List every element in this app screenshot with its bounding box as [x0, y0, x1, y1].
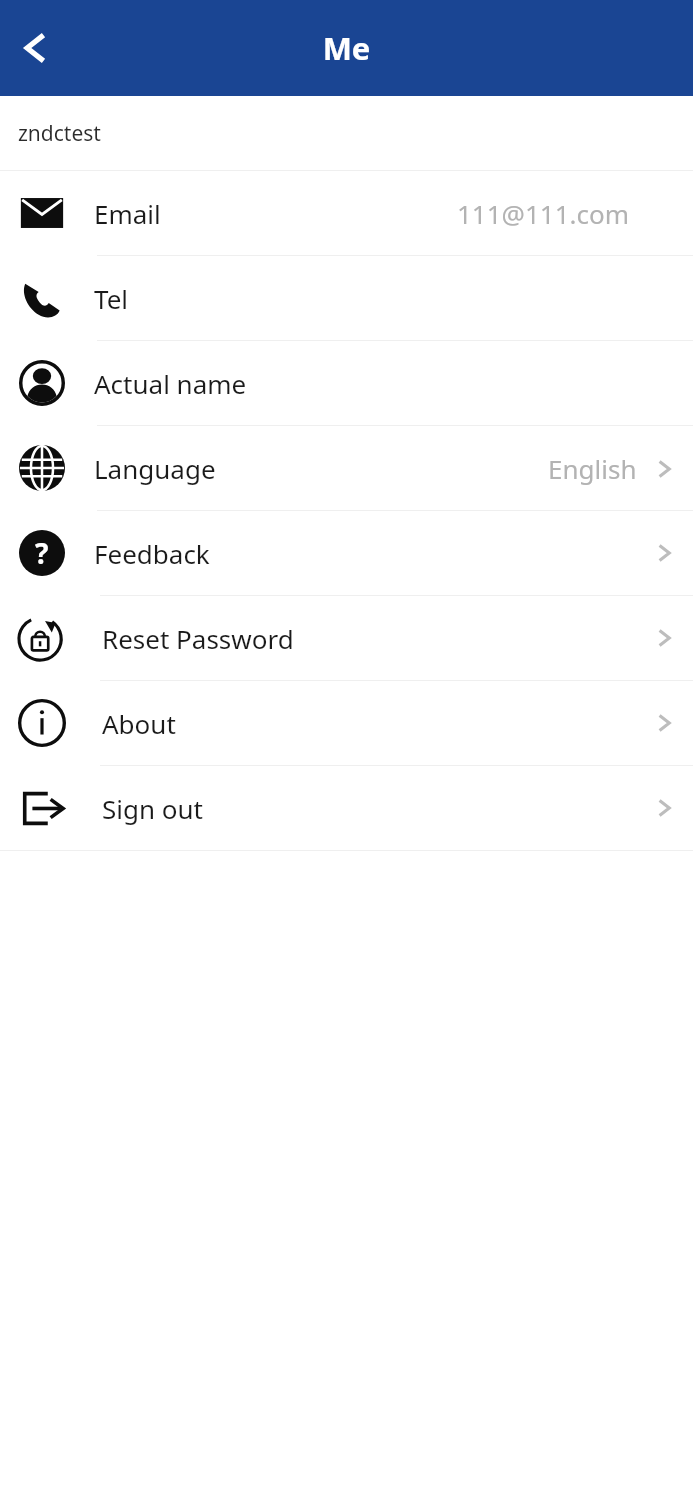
button[interactable]: Back — [0, 0, 72, 96]
button[interactable]: Language — [0, 426, 693, 510]
staticText: Language — [94, 451, 216, 486]
staticText: Sign out — [102, 791, 203, 826]
staticText: English — [548, 451, 637, 486]
button[interactable]: Email — [0, 171, 693, 255]
staticText: 111@111.com — [457, 196, 630, 231]
button[interactable]: Actual name — [0, 341, 693, 425]
staticText: Feedback — [94, 536, 210, 571]
staticText: About — [102, 706, 176, 741]
staticText: Actual name — [94, 366, 247, 401]
staticText: Me — [0, 27, 693, 69]
button[interactable]: Reset Password — [0, 596, 693, 680]
button[interactable]: Sign out — [0, 766, 693, 850]
button[interactable]: About — [0, 681, 693, 765]
staticText: ? — [35, 534, 49, 572]
staticText: Email — [94, 196, 161, 231]
staticText: Reset Password — [102, 621, 294, 656]
button[interactable]: Tel — [0, 256, 693, 340]
button[interactable]: ? — [0, 511, 693, 595]
staticText: zndctest — [18, 119, 101, 148]
staticText: Tel — [94, 281, 129, 316]
